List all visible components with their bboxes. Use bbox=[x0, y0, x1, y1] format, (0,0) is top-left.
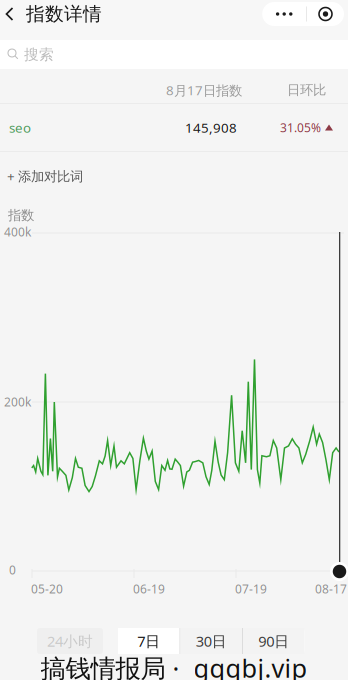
staticText: 8月17日指数 bbox=[166, 81, 242, 99]
button[interactable]: More bbox=[262, 2, 306, 26]
staticText: 30日 bbox=[196, 631, 227, 651]
button[interactable]: Back bbox=[0, 1, 26, 27]
staticText: 07-19 bbox=[235, 581, 267, 597]
staticText: 0 bbox=[9, 562, 16, 578]
button[interactable]: 搜索 bbox=[0, 40, 348, 69]
staticText: + 添加对比词 bbox=[7, 167, 83, 185]
staticText: 145,908 bbox=[185, 119, 237, 136]
button[interactable]: seo bbox=[0, 104, 348, 152]
button[interactable]: 7日 bbox=[118, 628, 179, 654]
button[interactable]: 90日 bbox=[243, 628, 304, 654]
staticText: 日环比 bbox=[287, 82, 326, 98]
staticText: 06-19 bbox=[133, 581, 165, 597]
staticText: 指数详情 bbox=[26, 2, 102, 25]
staticText: 31.05% bbox=[280, 119, 321, 135]
button[interactable]: + 添加对比词 bbox=[0, 152, 348, 192]
staticText: 200k bbox=[4, 394, 31, 410]
staticText: 24小时 bbox=[47, 631, 93, 651]
staticText: 400k bbox=[4, 224, 31, 240]
button[interactable]: Close bbox=[307, 2, 344, 26]
button[interactable]: 24小时 bbox=[37, 628, 103, 654]
staticText: 7日 bbox=[137, 631, 160, 651]
staticText: seo bbox=[9, 119, 31, 136]
staticText: 05-20 bbox=[31, 581, 63, 597]
staticText: 90日 bbox=[258, 631, 289, 651]
staticText: 08-17 bbox=[315, 581, 347, 597]
staticText: 搜索 bbox=[24, 45, 54, 63]
button[interactable]: 30日 bbox=[180, 628, 242, 654]
staticText: 搞钱情报局 · gqqbj.vip bbox=[40, 651, 307, 680]
staticText: 指数 bbox=[8, 207, 34, 223]
